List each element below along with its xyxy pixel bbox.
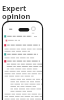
staticText: Expert opinion [2, 3, 31, 21]
button[interactable] [18, 27, 30, 32]
button[interactable] [2, 21, 43, 100]
